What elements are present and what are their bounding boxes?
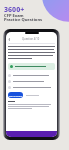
staticText: CFP Exam <box>4 13 24 19</box>
button[interactable]: Explanation <box>8 92 23 98</box>
button[interactable]: Back <box>8 38 11 41</box>
button[interactable] <box>8 63 55 70</box>
staticText: Question 4/10 <box>22 37 40 41</box>
staticText: 3600+ <box>4 5 25 15</box>
staticText: Practice Questions <box>4 17 43 23</box>
button[interactable]: Next question <box>6 131 57 137</box>
button[interactable] <box>8 84 55 90</box>
button[interactable] <box>8 72 55 78</box>
button[interactable] <box>8 78 55 84</box>
staticText: Explanation <box>9 94 23 97</box>
